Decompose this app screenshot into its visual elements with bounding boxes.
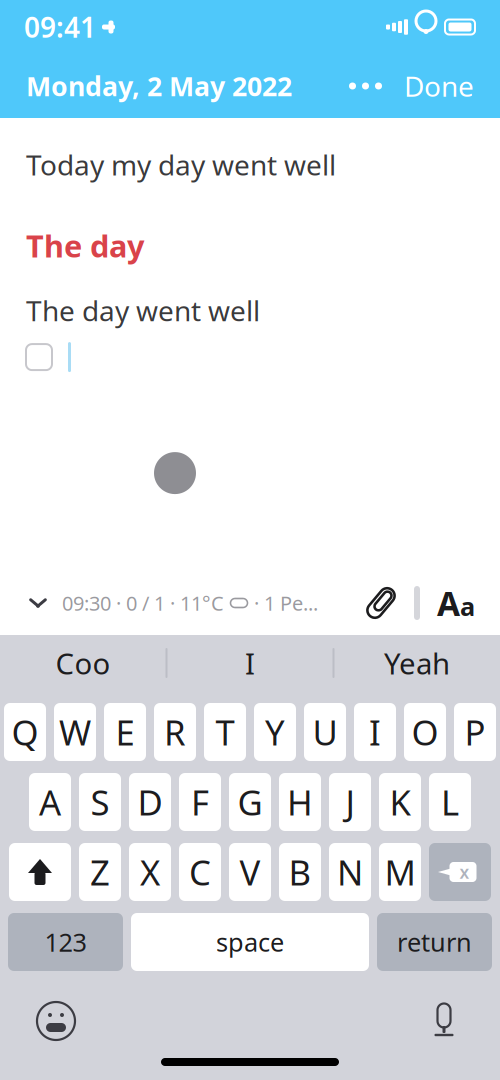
staticText: return bbox=[397, 925, 472, 959]
staticText: space bbox=[216, 925, 284, 959]
staticText: S bbox=[90, 779, 109, 825]
staticText: Yeah bbox=[384, 643, 450, 682]
staticText: a bbox=[460, 589, 475, 623]
button[interactable]: J bbox=[329, 773, 371, 831]
button[interactable]: P bbox=[454, 703, 496, 761]
button[interactable]: X bbox=[129, 843, 171, 901]
button[interactable]: W bbox=[54, 703, 96, 761]
staticText: M bbox=[384, 849, 415, 895]
button[interactable]: Delete bbox=[429, 843, 491, 901]
button[interactable]: I bbox=[167, 635, 332, 691]
button[interactable]: E bbox=[104, 703, 146, 761]
staticText: 09:41 bbox=[24, 8, 96, 46]
button[interactable]: Y bbox=[254, 703, 296, 761]
staticText: K bbox=[389, 779, 410, 825]
staticText: F bbox=[191, 779, 209, 825]
button[interactable]: A bbox=[29, 773, 71, 831]
button[interactable]: B bbox=[279, 843, 321, 901]
button[interactable]: T bbox=[204, 703, 246, 761]
staticText: D bbox=[137, 779, 162, 825]
staticText: Done bbox=[404, 67, 474, 105]
button[interactable]: G bbox=[229, 773, 271, 831]
button[interactable]: More options bbox=[341, 66, 390, 106]
button[interactable]: D bbox=[129, 773, 171, 831]
button[interactable]: R bbox=[154, 703, 196, 761]
staticText: Coo bbox=[55, 643, 110, 682]
staticText: H bbox=[287, 779, 313, 825]
staticText: P bbox=[464, 709, 485, 755]
staticText: V bbox=[239, 849, 260, 895]
staticText: x bbox=[459, 860, 469, 883]
staticText: 123 bbox=[44, 925, 86, 959]
button[interactable]: space bbox=[131, 913, 369, 971]
staticText: Q bbox=[11, 709, 38, 755]
staticText: Today my day went well bbox=[26, 146, 336, 183]
staticText: The day went well bbox=[26, 292, 260, 329]
staticText: Monday, 2 May 2022 bbox=[26, 68, 292, 104]
button[interactable]: return bbox=[377, 913, 492, 971]
button[interactable]: Collapse details bbox=[18, 581, 58, 625]
button[interactable]: F bbox=[179, 773, 221, 831]
staticText: Z bbox=[90, 849, 110, 895]
staticText: 09:30 · 0 / 1 · 11°C bbox=[62, 590, 224, 616]
button[interactable]: N bbox=[329, 843, 371, 901]
staticText: B bbox=[288, 849, 311, 895]
button[interactable]: Done bbox=[390, 66, 474, 106]
button[interactable]: 123 bbox=[8, 913, 123, 971]
staticText: X bbox=[140, 849, 160, 895]
staticText: · 1 Pe... bbox=[254, 590, 318, 616]
button[interactable]: I bbox=[354, 703, 396, 761]
staticText: I bbox=[369, 709, 381, 755]
button[interactable]: Yeah bbox=[334, 635, 499, 691]
staticText: A bbox=[39, 779, 61, 825]
staticText: I bbox=[245, 643, 255, 682]
button[interactable]: M bbox=[379, 843, 421, 901]
button[interactable]: Coo bbox=[0, 635, 165, 691]
button[interactable]: C bbox=[179, 843, 221, 901]
staticText: Y bbox=[265, 709, 285, 755]
button[interactable]: Text formatting bbox=[430, 580, 482, 626]
button[interactable]: Shift bbox=[9, 843, 71, 901]
button[interactable]: V bbox=[229, 843, 271, 901]
staticText: The day bbox=[26, 225, 145, 266]
button[interactable]: Attach file bbox=[358, 580, 404, 626]
staticText: O bbox=[411, 709, 438, 755]
staticText: U bbox=[312, 709, 337, 755]
button[interactable]: Q bbox=[4, 703, 46, 761]
staticText: G bbox=[237, 779, 262, 825]
staticText: A bbox=[437, 581, 460, 625]
button[interactable]: Z bbox=[79, 843, 121, 901]
button[interactable]: Emoji bbox=[28, 995, 84, 1047]
staticText: J bbox=[345, 779, 354, 825]
staticText: N bbox=[337, 849, 363, 895]
staticText: R bbox=[164, 709, 186, 755]
button[interactable]: S bbox=[79, 773, 121, 831]
button[interactable]: H bbox=[279, 773, 321, 831]
button[interactable]: L bbox=[429, 773, 471, 831]
button[interactable]: U bbox=[304, 703, 346, 761]
staticText: E bbox=[115, 709, 134, 755]
button[interactable]: K bbox=[379, 773, 421, 831]
staticText: C bbox=[189, 849, 211, 895]
button[interactable]: Dictate bbox=[416, 995, 472, 1047]
staticText: L bbox=[441, 779, 459, 825]
button[interactable]: O bbox=[404, 703, 446, 761]
staticText: T bbox=[215, 709, 234, 755]
staticText: W bbox=[59, 709, 91, 755]
